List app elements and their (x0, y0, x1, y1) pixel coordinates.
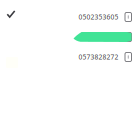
staticText: 0502353605 (78, 13, 118, 21)
button[interactable]: 0502353605 (0, 7, 140, 27)
button[interactable]: 0573828272 (0, 47, 140, 67)
button[interactable]: 0502353605 (0, 27, 140, 47)
staticText: 0573828272 (78, 53, 118, 61)
button[interactable]: Done (1, 5, 21, 23)
staticText: 0502353605 (78, 33, 118, 41)
